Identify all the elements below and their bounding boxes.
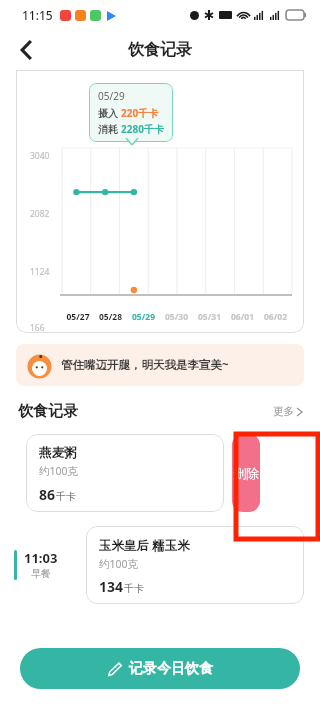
button[interactable]: 燕麦粥 xyxy=(26,434,224,512)
staticText: 约100克 xyxy=(99,557,139,571)
staticText: 86 xyxy=(39,485,56,504)
button[interactable]: 管住嘴迈开腿，明天我是李宣美~ xyxy=(16,344,304,386)
staticText: 05/29 xyxy=(98,89,125,103)
staticText: 记录今日饮食 xyxy=(129,660,213,678)
staticText: 05/28 xyxy=(94,311,127,323)
staticText: 2280千卡 xyxy=(121,122,164,136)
staticText: 删除 xyxy=(233,465,259,481)
staticText: 05/27 xyxy=(62,311,94,323)
staticText: 燕麦粥 xyxy=(39,445,77,461)
staticText: 05/29 xyxy=(127,311,160,323)
staticText: 2082 xyxy=(30,208,50,220)
staticText: 约100克 xyxy=(39,464,79,478)
staticText: 166 xyxy=(30,322,45,333)
staticText: 3040 xyxy=(30,150,50,162)
staticText: 05/30 xyxy=(160,311,193,323)
staticText: 摄入 xyxy=(98,106,121,120)
staticText: 饮食记录 xyxy=(18,402,78,421)
staticText: 管住嘴迈开腿，明天我是李宣美~ xyxy=(61,357,229,373)
staticText: 1124 xyxy=(30,266,50,278)
staticText: 千卡 xyxy=(124,582,144,595)
staticText: 饮食记录 xyxy=(128,40,192,60)
staticText: 11:15 xyxy=(22,7,53,23)
staticText: 05/31 xyxy=(193,311,226,323)
staticText: 早餐 xyxy=(31,567,51,580)
staticText: 06/02 xyxy=(259,311,292,323)
staticText: 消耗 xyxy=(98,122,121,136)
staticText: 11:03 xyxy=(24,549,58,567)
staticText: 千卡 xyxy=(56,490,76,503)
staticText: 06/01 xyxy=(226,311,259,323)
staticText: 玉米皇后 糯玉米 xyxy=(99,537,190,554)
button[interactable]: 玉米皇后 糯玉米 xyxy=(86,526,304,604)
staticText: 更多 xyxy=(273,405,294,418)
button[interactable]: 记录今日饮食 xyxy=(20,648,300,689)
button[interactable]: 更多 xyxy=(273,405,302,418)
button[interactable]: Back xyxy=(10,33,44,67)
staticText: 134 xyxy=(99,577,124,596)
button[interactable]: 删除 xyxy=(232,434,260,512)
staticText: 220千卡 xyxy=(121,106,159,120)
